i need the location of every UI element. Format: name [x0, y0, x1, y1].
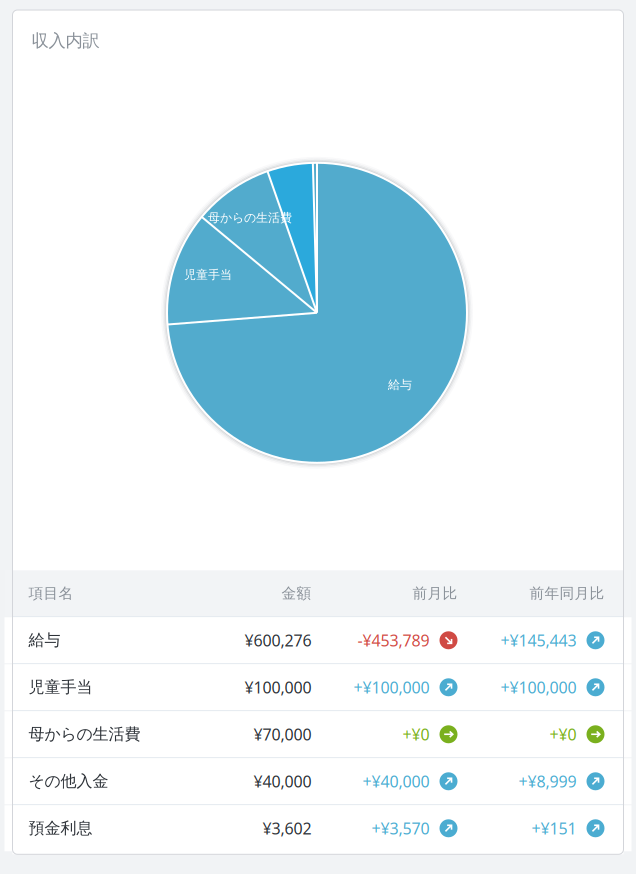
staticText: 預金利息 — [28, 818, 92, 838]
staticText: +¥40,000 — [362, 771, 429, 792]
staticText: 給与 — [388, 377, 412, 392]
staticText: 項目名 — [28, 584, 73, 602]
button[interactable]: 給与 — [4, 617, 631, 663]
staticText: +¥0 — [402, 724, 429, 745]
staticText: 児童手当 — [184, 267, 232, 282]
staticText: -¥453,789 — [357, 630, 429, 651]
staticText: 給与 — [28, 630, 60, 650]
button[interactable]: 児童手当 — [4, 664, 631, 710]
staticText: 前年同月比 — [529, 584, 604, 602]
staticText: 収入内訳 — [31, 30, 99, 51]
staticText: その他入金 — [28, 771, 108, 791]
staticText: +¥3,570 — [371, 818, 429, 839]
staticText: 前月比 — [412, 584, 457, 602]
staticText: +¥151 — [531, 818, 576, 839]
staticText: 児童手当 — [28, 677, 92, 697]
button[interactable]: 母からの生活費 — [4, 711, 631, 757]
staticText: 母からの生活費 — [208, 210, 292, 225]
staticText: ¥70,000 — [253, 724, 311, 745]
staticText: +¥8,999 — [518, 771, 576, 792]
staticText: 金額 — [281, 584, 311, 602]
staticText: +¥145,443 — [500, 630, 576, 651]
button[interactable]: その他入金 — [4, 758, 631, 804]
staticText: ¥600,276 — [244, 630, 311, 651]
button[interactable]: 預金利息 — [4, 805, 631, 851]
staticText: +¥100,000 — [500, 677, 576, 698]
staticText: ¥3,602 — [262, 818, 311, 839]
staticText: +¥100,000 — [353, 677, 429, 698]
staticText: ¥40,000 — [253, 771, 311, 792]
staticText: +¥0 — [549, 724, 576, 745]
staticText: 母からの生活費 — [28, 724, 140, 744]
staticText: ¥100,000 — [244, 677, 311, 698]
